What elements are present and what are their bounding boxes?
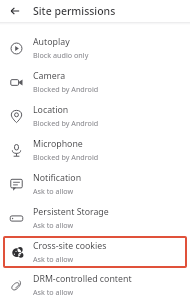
button[interactable]: Location (0, 99, 190, 133)
button[interactable]: Back (7, 3, 23, 19)
staticText: Location (33, 104, 69, 116)
staticText: Microphone (33, 138, 83, 150)
staticText: Persistent Storage (33, 206, 109, 218)
button[interactable]: Persistent Storage (0, 201, 190, 235)
staticText: DRM-controlled content (33, 273, 132, 285)
staticText: Ask to allow (33, 220, 74, 230)
staticText: Block audio only (33, 50, 89, 60)
staticText: Ask to allow (33, 186, 74, 196)
button[interactable]: Autoplay (0, 31, 190, 65)
staticText: Blocked by Android (33, 118, 99, 128)
staticText: Site permissions (33, 4, 116, 18)
staticText: Blocked by Android (33, 84, 99, 94)
staticText: Notification (33, 172, 82, 184)
button[interactable]: DRM-controlled content (0, 269, 190, 300)
button[interactable]: Cross-site cookies (3, 236, 187, 268)
button[interactable]: Camera (0, 65, 190, 99)
staticText: Blocked by Android (33, 152, 99, 162)
staticText: Autoplay (33, 36, 70, 48)
staticText: Ask to allow (33, 287, 74, 297)
button[interactable]: Notification (0, 167, 190, 201)
staticText: Camera (33, 70, 66, 82)
button[interactable]: Microphone (0, 133, 190, 167)
staticText: Cross-site cookies (33, 240, 107, 252)
staticText: Ask to allow (33, 254, 74, 264)
